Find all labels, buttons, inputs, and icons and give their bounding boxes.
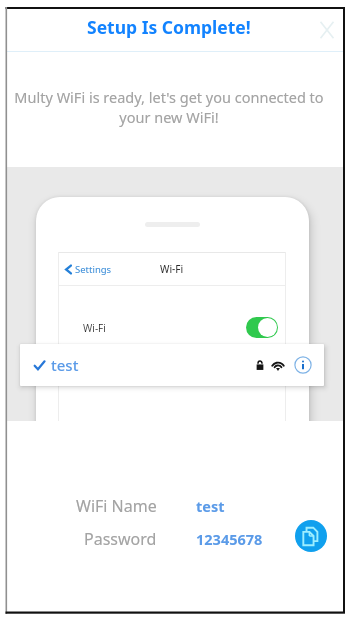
button[interactable]: Copy [295, 520, 327, 552]
button[interactable]: Wi-Fi toggle [246, 317, 278, 338]
button[interactable]: test [20, 344, 324, 386]
staticText: Wi-Fi [83, 321, 106, 335]
staticText: Password [84, 528, 157, 550]
button[interactable]: Close [312, 15, 342, 45]
staticText: test [196, 496, 225, 516]
staticText: test [51, 355, 79, 375]
staticText: Wi-Fi [160, 262, 184, 276]
staticText: Multy WiFi is ready, let's get you conne… [10, 87, 328, 128]
staticText: Setup Is Complete! [87, 15, 251, 39]
staticText: 12345678 [196, 529, 263, 549]
staticText: Settings [75, 263, 112, 276]
staticText: WiFi Name [76, 495, 157, 517]
